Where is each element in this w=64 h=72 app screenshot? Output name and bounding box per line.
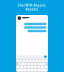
staticText: Chat With Anyone,	[17, 4, 46, 7]
staticText: Anytime	[25, 8, 38, 11]
button[interactable]: Send	[44, 55, 47, 58]
button[interactable]: Profile	[17, 16, 21, 20]
